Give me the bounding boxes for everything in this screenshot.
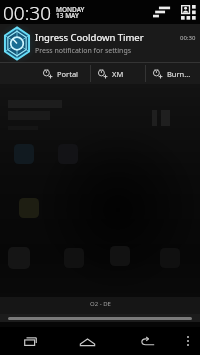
button[interactable]: More options	[176, 327, 200, 355]
button[interactable]: Burn...	[146, 63, 200, 84]
staticText: 00:30	[180, 34, 196, 42]
staticText: MONDAY	[56, 5, 85, 14]
button[interactable]: Home	[58, 327, 117, 355]
staticText: 00:30	[3, 0, 52, 24]
staticText: Ingress Cooldown Timer	[35, 31, 144, 44]
staticText: Press notification for settings	[35, 46, 132, 56]
staticText: O2 - DE	[90, 300, 111, 308]
button[interactable]: XM	[91, 63, 145, 84]
button[interactable]: Portal	[36, 63, 90, 84]
staticText: 13 MAY	[56, 11, 79, 20]
button[interactable]: Back	[117, 327, 176, 355]
staticText: Portal	[57, 69, 79, 79]
staticText: Burn...	[167, 69, 191, 79]
staticText: XM	[112, 69, 124, 79]
button[interactable]: Recents	[0, 327, 58, 355]
button[interactable]: Ingress Cooldown Timer	[0, 24, 200, 62]
